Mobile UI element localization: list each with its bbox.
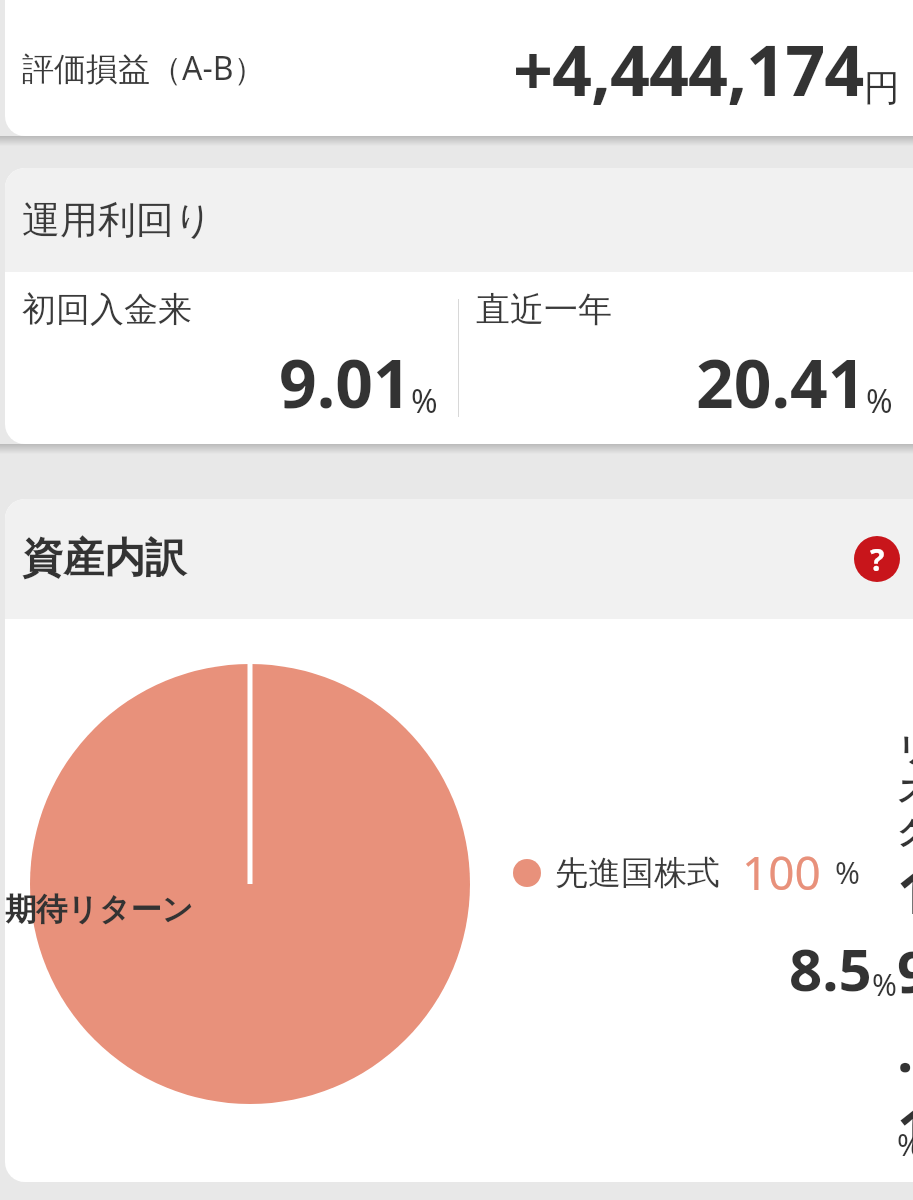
staticText: 先進国株式	[555, 852, 720, 894]
staticText: 初回入金来	[22, 288, 192, 331]
button[interactable]: 評価損益（A-B）	[5, 0, 913, 136]
staticText: ?	[870, 539, 885, 580]
staticText: +4,444,174	[513, 21, 864, 116]
staticText: 資産内訳	[22, 533, 186, 585]
staticText: 8.5	[789, 929, 872, 1008]
staticText: 評価損益（A-B）	[22, 46, 266, 90]
staticText: %	[866, 379, 893, 423]
button[interactable]: ヘルプ	[854, 536, 900, 582]
staticText: 期待リターン	[5, 890, 897, 929]
button[interactable]: 運用利回り	[5, 168, 913, 444]
staticText: 円	[864, 65, 900, 110]
staticText: 9.01	[279, 337, 411, 427]
staticText: %	[872, 964, 897, 1005]
button[interactable]: 直近一年	[459, 272, 913, 444]
staticText: %	[835, 852, 860, 893]
staticText: %	[411, 379, 438, 423]
button[interactable]: 期待リターン	[5, 890, 897, 1008]
staticText: 運用利回り	[22, 196, 213, 244]
staticText: 20.41	[696, 337, 866, 427]
button[interactable]: 初回入金来	[5, 272, 458, 444]
staticText: 100	[742, 841, 821, 904]
staticText: 直近一年	[476, 288, 612, 331]
